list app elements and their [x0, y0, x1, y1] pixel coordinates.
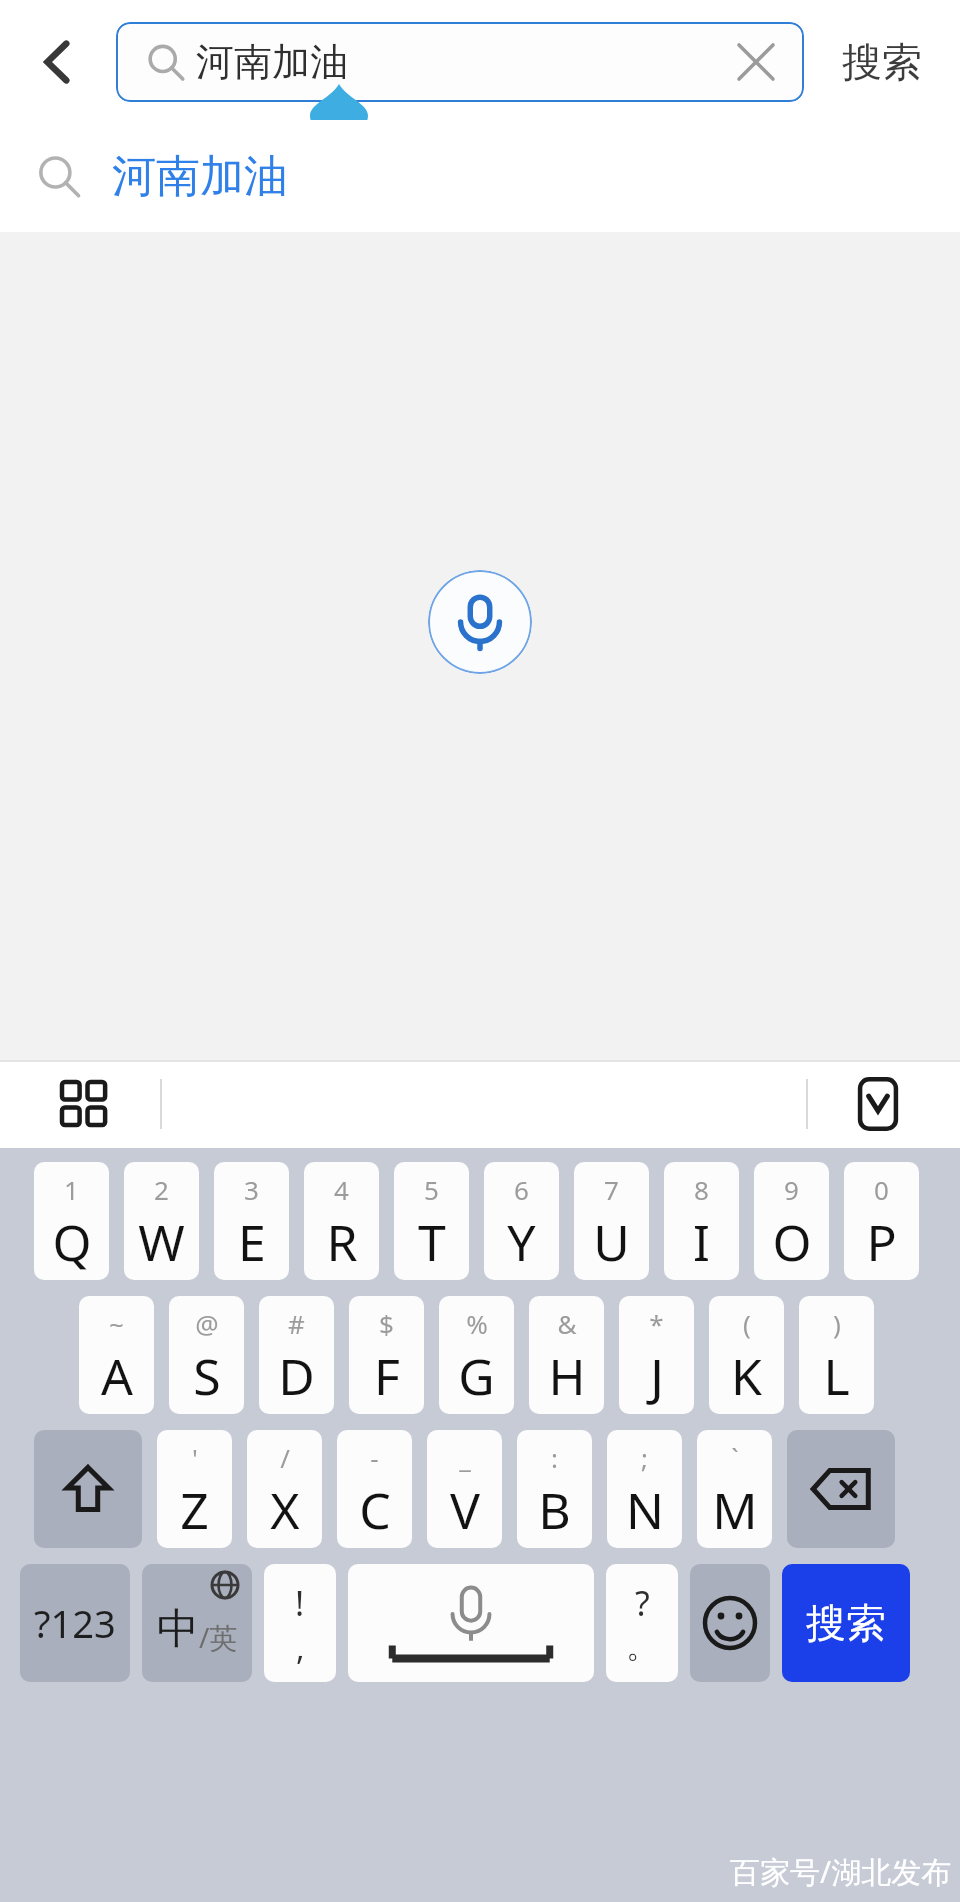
staticText: ! [295, 1580, 305, 1626]
staticText: /英 [199, 1618, 238, 1656]
staticText: V [450, 1476, 480, 1544]
button[interactable]: @ [169, 1296, 244, 1414]
staticText: 百家号/湖北发布 [730, 1851, 952, 1892]
button[interactable]: $ [349, 1296, 424, 1414]
staticText: 4 [334, 1172, 349, 1207]
staticText: 0 [874, 1172, 889, 1207]
staticText: E [238, 1208, 266, 1276]
button[interactable]: ? [606, 1564, 678, 1682]
button[interactable]: ! [264, 1564, 336, 1682]
button[interactable]: 7 [574, 1162, 649, 1280]
button[interactable]: Shift [34, 1430, 142, 1548]
button[interactable]: 5 [394, 1162, 469, 1280]
staticText: 5 [424, 1172, 439, 1207]
staticText: Y [507, 1208, 536, 1276]
button[interactable]: Space [348, 1564, 594, 1682]
staticText: % [466, 1306, 488, 1341]
button[interactable]: 搜索 [782, 1564, 910, 1682]
staticText: U [593, 1208, 630, 1276]
staticText: 河南加油 [112, 149, 288, 204]
staticText: N [626, 1476, 664, 1544]
staticText: , [296, 1626, 305, 1666]
staticText: - [370, 1440, 379, 1475]
staticText: ?123 [34, 1597, 116, 1649]
staticText: F [374, 1342, 400, 1410]
staticText: ? [635, 1580, 650, 1626]
staticText: B [538, 1476, 571, 1544]
button[interactable]: Emoji [690, 1564, 770, 1682]
staticText: ' [192, 1440, 198, 1475]
staticText: I [693, 1208, 710, 1276]
staticText: ; [641, 1440, 648, 1475]
staticText: 6 [514, 1172, 529, 1207]
button[interactable]: 河南加油 [0, 120, 960, 232]
staticText: * [649, 1306, 664, 1341]
staticText: 搜索 [842, 37, 922, 87]
button[interactable]: ~ [79, 1296, 154, 1414]
staticText: # [288, 1306, 305, 1341]
button[interactable]: ; [607, 1430, 682, 1548]
button[interactable]: 6 [484, 1162, 559, 1280]
button[interactable]: 3 [214, 1162, 289, 1280]
button[interactable]: ( [709, 1296, 784, 1414]
button[interactable]: 河南加油 [116, 22, 804, 102]
staticText: T [418, 1208, 446, 1276]
staticText: 2 [154, 1172, 169, 1207]
staticText: Q [52, 1208, 92, 1276]
button[interactable]: * [619, 1296, 694, 1414]
staticText: 搜索 [806, 1598, 886, 1648]
staticText: W [138, 1208, 185, 1276]
staticText: / [280, 1440, 290, 1475]
staticText: H [548, 1342, 586, 1410]
button[interactable]: / [247, 1430, 322, 1548]
staticText: Z [180, 1476, 209, 1544]
staticText: 河南加油 [196, 38, 348, 86]
staticText: C [359, 1476, 391, 1544]
button[interactable]: 搜索 [808, 16, 956, 108]
staticText: ` [731, 1440, 739, 1475]
staticText: M [712, 1476, 758, 1544]
staticText: ) [833, 1306, 841, 1341]
button[interactable]: 2 [124, 1162, 199, 1280]
staticText: 9 [784, 1172, 799, 1207]
staticText: $ [379, 1306, 394, 1341]
button[interactable]: 4 [304, 1162, 379, 1280]
staticText: L [823, 1342, 850, 1410]
button[interactable]: Voice search [428, 570, 532, 674]
button[interactable]: ) [799, 1296, 874, 1414]
staticText: @ [195, 1306, 219, 1341]
staticText: : [551, 1440, 558, 1475]
button[interactable]: - [337, 1430, 412, 1548]
button[interactable]: 9 [754, 1162, 829, 1280]
button[interactable]: ` [697, 1430, 772, 1548]
button[interactable]: & [529, 1296, 604, 1414]
button[interactable]: ?123 [20, 1564, 130, 1682]
staticText: P [866, 1208, 897, 1276]
button[interactable]: Backspace [787, 1430, 895, 1548]
staticText: K [731, 1342, 762, 1410]
button[interactable]: Hide keyboard [838, 1064, 918, 1144]
button[interactable]: % [439, 1296, 514, 1414]
staticText: A [101, 1342, 133, 1410]
staticText: _ [459, 1440, 471, 1475]
staticText: & [557, 1306, 577, 1341]
staticText: R [326, 1208, 358, 1276]
button[interactable]: Back [12, 16, 104, 108]
staticText: J [650, 1342, 664, 1410]
staticText: O [772, 1208, 812, 1276]
staticText: ~ [109, 1306, 124, 1341]
button[interactable]: # [259, 1296, 334, 1414]
button[interactable]: 0 [844, 1162, 919, 1280]
button[interactable]: 8 [664, 1162, 739, 1280]
button[interactable]: Switch language [142, 1564, 252, 1682]
button[interactable]: 1 [34, 1162, 109, 1280]
staticText: 8 [694, 1172, 709, 1207]
staticText: D [278, 1342, 315, 1410]
button[interactable]: Keyboard layouts [44, 1064, 124, 1144]
button[interactable]: _ [427, 1430, 502, 1548]
button[interactable]: ' [157, 1430, 232, 1548]
button[interactable]: Clear text [720, 26, 792, 98]
button[interactable]: : [517, 1430, 592, 1548]
staticText: 1 [64, 1172, 79, 1207]
staticText: ( [743, 1306, 751, 1341]
